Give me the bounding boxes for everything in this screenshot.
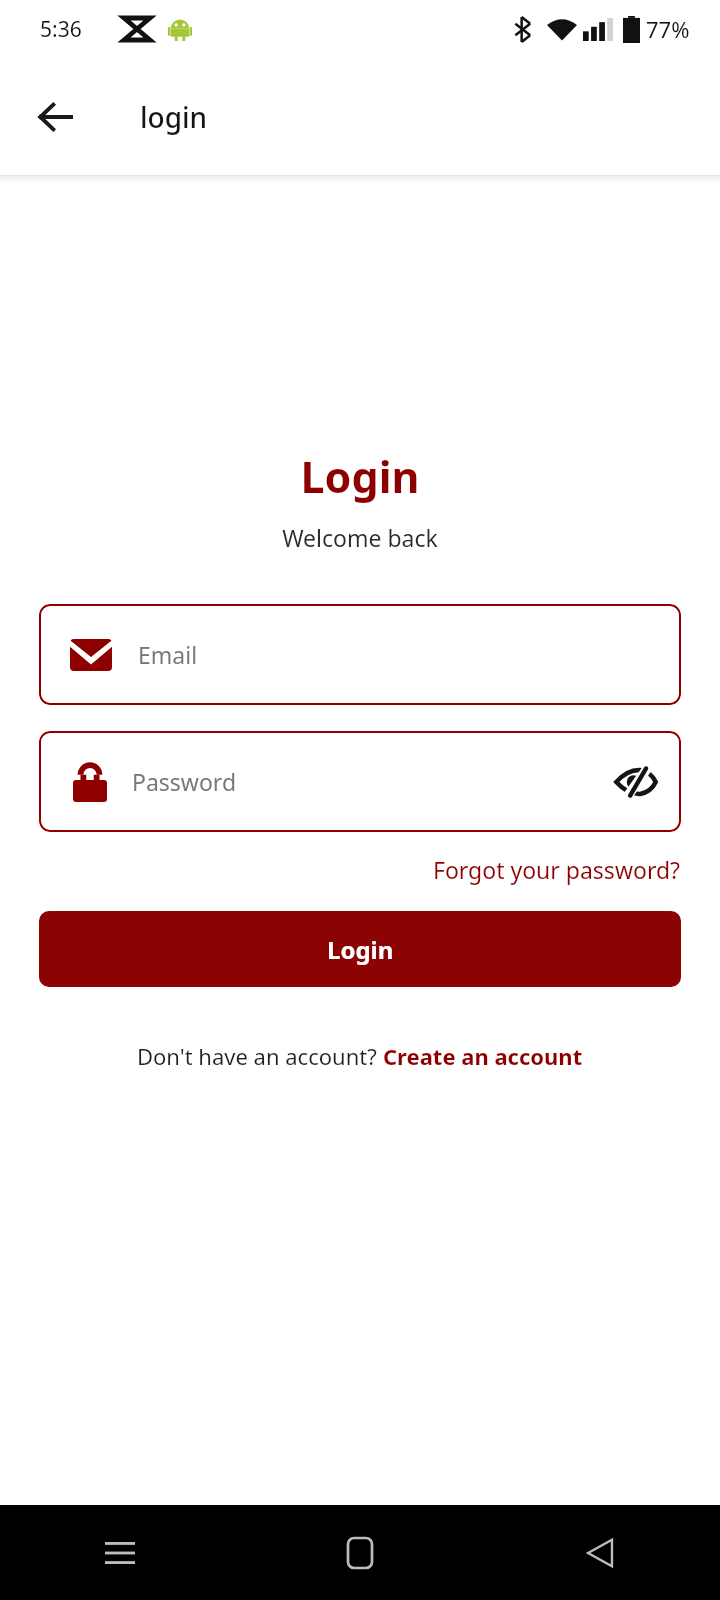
button[interactable]: Email: [39, 604, 681, 705]
staticText: Welcome back: [0, 522, 720, 553]
staticText: login: [140, 98, 208, 136]
staticText: Email: [138, 639, 198, 670]
staticText: Forgot your password?: [433, 854, 681, 885]
staticText: 77%: [646, 14, 690, 44]
staticText: Login: [327, 933, 394, 966]
staticText: 5:36: [40, 15, 82, 44]
button[interactable]: Create an account: [383, 1041, 583, 1071]
button[interactable]: Back: [28, 89, 84, 145]
button[interactable]: Show password: [609, 755, 663, 809]
button[interactable]: Login: [39, 911, 681, 987]
button[interactable]: Home: [240, 1505, 480, 1600]
staticText: Don't have an account?: [137, 1041, 383, 1071]
staticText: Password: [132, 766, 609, 797]
button[interactable]: Password: [39, 731, 681, 832]
button[interactable]: Back: [480, 1505, 720, 1600]
button[interactable]: Forgot your password?: [433, 854, 681, 885]
button[interactable]: Recent apps: [0, 1505, 240, 1600]
staticText: Login: [0, 447, 720, 506]
staticText: Create an account: [383, 1041, 583, 1071]
